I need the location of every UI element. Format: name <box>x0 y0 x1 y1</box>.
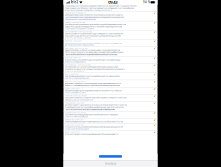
staticText: Цитата: проверьте настройки в разделе «с… <box>66 16 124 18</box>
staticText: Столкнулся с очень похожей проблемой, по… <box>65 126 123 128</box>
button[interactable]: Edit <box>153 102 156 104</box>
button[interactable]: Edit <box>153 95 156 97</box>
staticText: Сергей Иванов • 13 окт 2021 в 10:02 <box>65 31 92 33</box>
staticText: попробуйте заменить патч-корд на заведом… <box>65 68 125 70</box>
staticText: Подскажите пожалуйста где найти документ… <box>65 97 127 99</box>
button[interactable]: Edit <box>153 88 156 90</box>
staticText: Роман Белов • 22 окт 2021 <box>65 102 85 104</box>
staticText: подскажите куда смотреть и что проверять… <box>65 35 121 37</box>
staticText: также можно посмотреть на профильных фор… <box>65 106 124 108</box>
staticText: Олег • 18 окт 2021 <box>65 73 79 75</box>
staticText: Иван Петров • вчера в 21:14 <box>65 12 86 14</box>
staticText: Добрый день! Подскажите пожалуйста как п… <box>65 14 123 16</box>
staticText: ещё раз благодарю за помощь всем участни… <box>65 26 122 28</box>
staticText: Спасибо всем за помощь! Тема закрыта, пр… <box>65 114 118 116</box>
staticText: 09:43 <box>108 0 117 5</box>
staticText: Обновил прошивку до последней версии, вс… <box>65 90 122 92</box>
button[interactable]: Edit <box>153 12 156 14</box>
button[interactable] <box>99 155 122 158</box>
staticText: перейти к сообщению №148 <box>65 61 86 63</box>
button[interactable]: Edit <box>153 31 156 33</box>
staticText: Tele2 <box>71 0 79 4</box>
staticText: Тема перемещена в раздел «Решённые вопро… <box>65 121 123 123</box>
staticText: подробнее о настройке оборудования <box>65 19 96 20</box>
staticText: А если не помогает — значит проблема в к… <box>65 66 118 68</box>
staticText: Документация есть в разделе загрузки на … <box>65 104 127 106</box>
staticText: Отличная тема, много полезной информации… <box>65 133 118 135</box>
button[interactable]: Edit <box>153 64 156 67</box>
staticText: Георгий • 21 окт 2021 в 08:30 <box>65 95 87 97</box>
staticText: создать новую тему в разделе <box>65 128 89 130</box>
staticText: У меня такая же ситуация, но немного дру… <box>65 33 123 35</box>
button[interactable]: Edit <box>153 124 156 127</box>
button[interactable]: Edit <box>153 47 156 50</box>
staticText: Виктор • 19 окт 2021 в 09:15 <box>65 80 86 82</box>
staticText: Проверил всё по списку, питание есть, ин… <box>65 42 122 44</box>
staticText: Цитата: сброс выполняется удержанием кно… <box>66 54 117 55</box>
staticText: смотреть схему подключения <box>65 77 89 79</box>
staticText: фото подключения и схема разъёмов <box>65 44 94 46</box>
staticText: Спасибо за ответ, попробовал — всё зараб… <box>65 24 126 25</box>
staticText: Всё получилось, спасибо большое за подро… <box>65 59 120 61</box>
button[interactable]: Edit <box>153 21 156 24</box>
staticText: Подтверждаю, у меня была точно такая же … <box>65 75 120 77</box>
staticText: Модератор • 24 окт 2021 <box>65 119 84 121</box>
staticText: перейти к последнему сообщению • страниц… <box>65 9 112 11</box>
staticText: Добавлю от себя: обязательно проверяйте … <box>65 82 121 84</box>
staticText: Ответить • Цитировать • Жалоба <box>65 37 91 39</box>
staticText: Максим Орлов • 17 окт 2021 в 18:44 <box>65 64 91 66</box>
staticText: Админ • 12 окт 2021 в 11:28 <box>65 22 85 23</box>
button[interactable]: Edit <box>153 73 156 76</box>
button[interactable]: Edit <box>153 119 156 121</box>
staticText: обязательно сохраните текущую конфигурац… <box>65 51 124 53</box>
staticText: Дмитрий К. • 15 окт 2021 в 16:55 <box>65 47 88 49</box>
staticText: скачать прошивку с сайта <box>65 92 86 94</box>
staticText: Николай • 14 окт 2021 <box>65 40 82 42</box>
button[interactable]: Edit <box>153 80 156 83</box>
staticText: Егор • 25 окт 2021 в 19:05 <box>65 124 84 126</box>
staticText: 94 % <box>143 0 150 4</box>
staticText: Андрей • 23 окт 2021 в 14:20 <box>65 112 86 113</box>
staticText: Цитата: ссылка на PDF-документацию в пер… <box>66 108 115 110</box>
staticText: Алексей • 16 окт 2021 <box>65 57 82 59</box>
staticText: Павел • 20 окт 2021 <box>65 88 80 89</box>
button[interactable]: Edit <box>153 131 156 134</box>
button[interactable]: Edit <box>153 57 156 59</box>
staticText: официальный сайт производителя <box>65 99 93 101</box>
staticText: forum.ru <box>104 162 116 165</box>
staticText: Ответить • Цитировать <box>65 70 84 72</box>
staticText: Можно попробовать сбросить к заводским н… <box>65 49 120 51</box>
staticText: отметить тему как решённую <box>65 116 88 118</box>
button[interactable]: Edit <box>153 112 156 114</box>
staticText: Тема создана 12 октября 2021 г. в 09:12 … <box>65 7 134 9</box>
staticText: Денис • 26 окт 2021 <box>65 131 80 133</box>
button[interactable]: Edit <box>153 40 156 43</box>
staticText: бывает устаревшей и вызывает подобные пр… <box>65 85 120 86</box>
staticText: ссылка на инструкцию по установке <box>65 28 94 30</box>
staticText: Тема: помощь с настройкой, разъёмами и с… <box>65 5 137 7</box>
